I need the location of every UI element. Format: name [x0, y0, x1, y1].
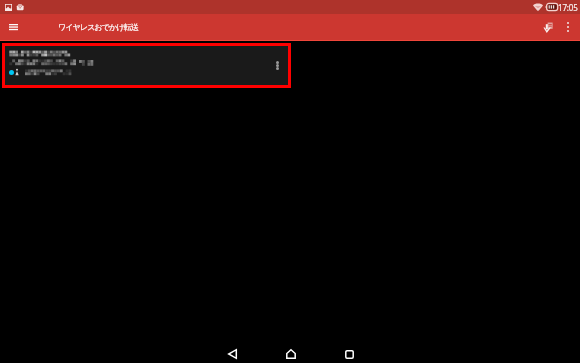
button[interactable]: Item options — [5, 46, 288, 85]
button[interactable]: Download — [536, 16, 558, 38]
button[interactable]: Recents — [332, 340, 366, 363]
staticText: ワイヤレスおでかけ転送 — [58, 22, 139, 32]
button[interactable]: Home — [274, 340, 308, 363]
staticText: 17:05 — [558, 2, 578, 13]
button[interactable]: More options — [558, 17, 578, 37]
button[interactable]: Navigation menu — [2, 16, 24, 38]
button[interactable]: Back — [215, 340, 249, 363]
button[interactable]: Item options — [269, 57, 285, 73]
